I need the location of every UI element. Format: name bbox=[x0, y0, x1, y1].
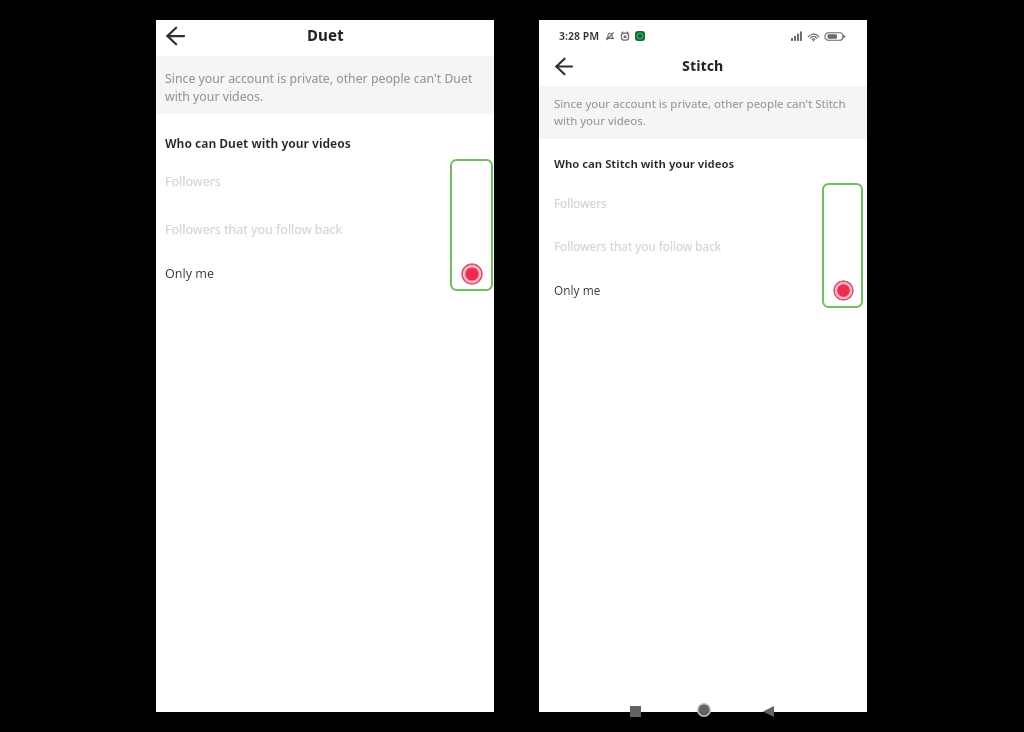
staticText: Followers that you follow back bbox=[165, 221, 343, 238]
button[interactable]: Back bbox=[763, 706, 774, 717]
staticText: Since your account is private, other peo… bbox=[165, 70, 478, 105]
staticText: Only me bbox=[165, 265, 215, 282]
button[interactable]: Only me bbox=[539, 277, 867, 303]
button[interactable]: Followers that you follow back bbox=[539, 233, 867, 259]
button[interactable]: Followers bbox=[539, 190, 867, 216]
staticText: 3:28 PM bbox=[559, 29, 600, 43]
button[interactable]: Only me selected bbox=[833, 280, 854, 301]
staticText: Who can Duet with your videos bbox=[165, 135, 351, 151]
button[interactable]: Only me selected bbox=[461, 263, 483, 285]
staticText: Since your account is private, other peo… bbox=[554, 96, 857, 128]
staticText: Followers bbox=[165, 173, 221, 190]
staticText: Stitch bbox=[682, 56, 724, 75]
staticText: Duet bbox=[307, 25, 344, 45]
staticText: Followers that you follow back bbox=[554, 238, 722, 254]
button[interactable]: Home bbox=[697, 703, 711, 717]
staticText: Who can Stitch with your videos bbox=[554, 156, 735, 171]
button[interactable]: Back bbox=[549, 52, 577, 80]
staticText: Followers bbox=[554, 195, 607, 211]
staticText: Only me bbox=[554, 282, 601, 298]
button[interactable]: Only me bbox=[156, 260, 494, 286]
button[interactable]: Back bbox=[161, 22, 189, 50]
button[interactable]: Followers bbox=[156, 168, 494, 194]
button[interactable]: Followers that you follow back bbox=[156, 216, 494, 242]
